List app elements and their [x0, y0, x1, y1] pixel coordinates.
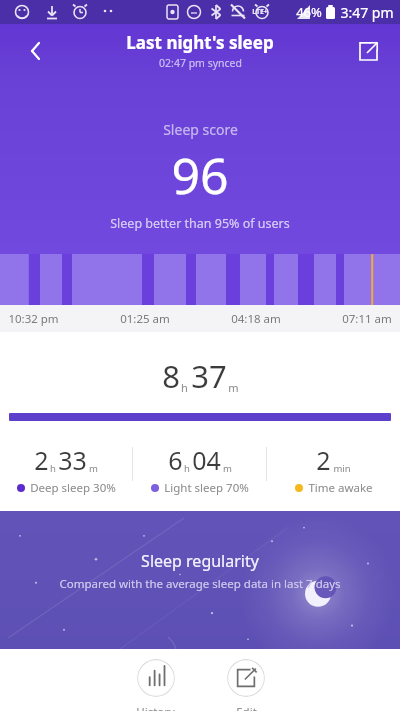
staticText: 8 — [162, 355, 180, 397]
staticText: Sleep better than 95% of users — [110, 215, 290, 232]
staticText: Sleep score — [163, 120, 238, 139]
staticText: Sleep regularity — [141, 550, 259, 572]
staticText: 2 — [34, 443, 49, 477]
staticText: h — [184, 462, 190, 475]
button[interactable]: 6 — [133, 443, 266, 496]
staticText: Light sleep 70% — [164, 480, 249, 496]
button[interactable]: Share — [346, 29, 390, 73]
staticText: 96 — [171, 141, 229, 209]
button[interactable]: History — [136, 659, 175, 711]
staticText: 46% — [296, 3, 322, 21]
staticText: Compared with the average sleep data in … — [59, 576, 341, 592]
staticText: 2 — [316, 443, 331, 477]
staticText: min — [333, 462, 351, 475]
staticText: LTE+ — [252, 7, 268, 17]
staticText: 33 — [58, 443, 87, 477]
staticText: h — [50, 462, 56, 475]
staticText: 6 — [168, 443, 183, 477]
staticText: 04:18 am — [231, 311, 281, 327]
button[interactable]: 2 — [267, 443, 400, 496]
staticText: m — [89, 462, 98, 475]
button[interactable]: Edit — [227, 659, 265, 711]
staticText: h — [181, 380, 188, 395]
button[interactable]: Back — [14, 29, 58, 73]
staticText: 01:25 am — [120, 311, 170, 327]
staticText: 07:11 am — [342, 311, 392, 327]
staticText: Deep sleep 30% — [30, 480, 116, 496]
staticText: 37 — [191, 355, 227, 397]
staticText: m — [223, 462, 232, 475]
staticText: Time awake — [308, 480, 373, 496]
staticText: m — [228, 380, 239, 395]
staticText: 3:47 pm — [340, 3, 394, 22]
staticText: 02:47 pm synced — [159, 56, 242, 70]
staticText: 10:32 pm — [8, 311, 59, 327]
button[interactable]: 2 — [0, 443, 132, 496]
button[interactable]: Sleep regularity — [0, 511, 400, 649]
staticText: Last night's sleep — [126, 31, 274, 54]
staticText: Edit — [236, 704, 257, 711]
staticText: History — [136, 704, 175, 711]
staticText: 04 — [192, 443, 221, 477]
